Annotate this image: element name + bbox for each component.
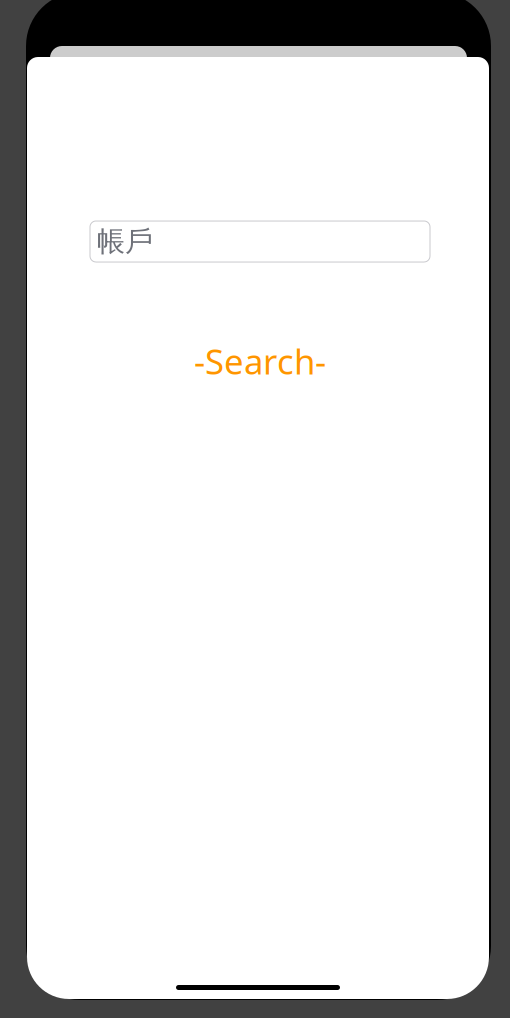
button[interactable]: 帳戶 [90,221,430,262]
staticText: -Search- [194,338,326,384]
button[interactable]: -Search- [194,338,326,384]
staticText: 帳戶 [97,224,153,259]
